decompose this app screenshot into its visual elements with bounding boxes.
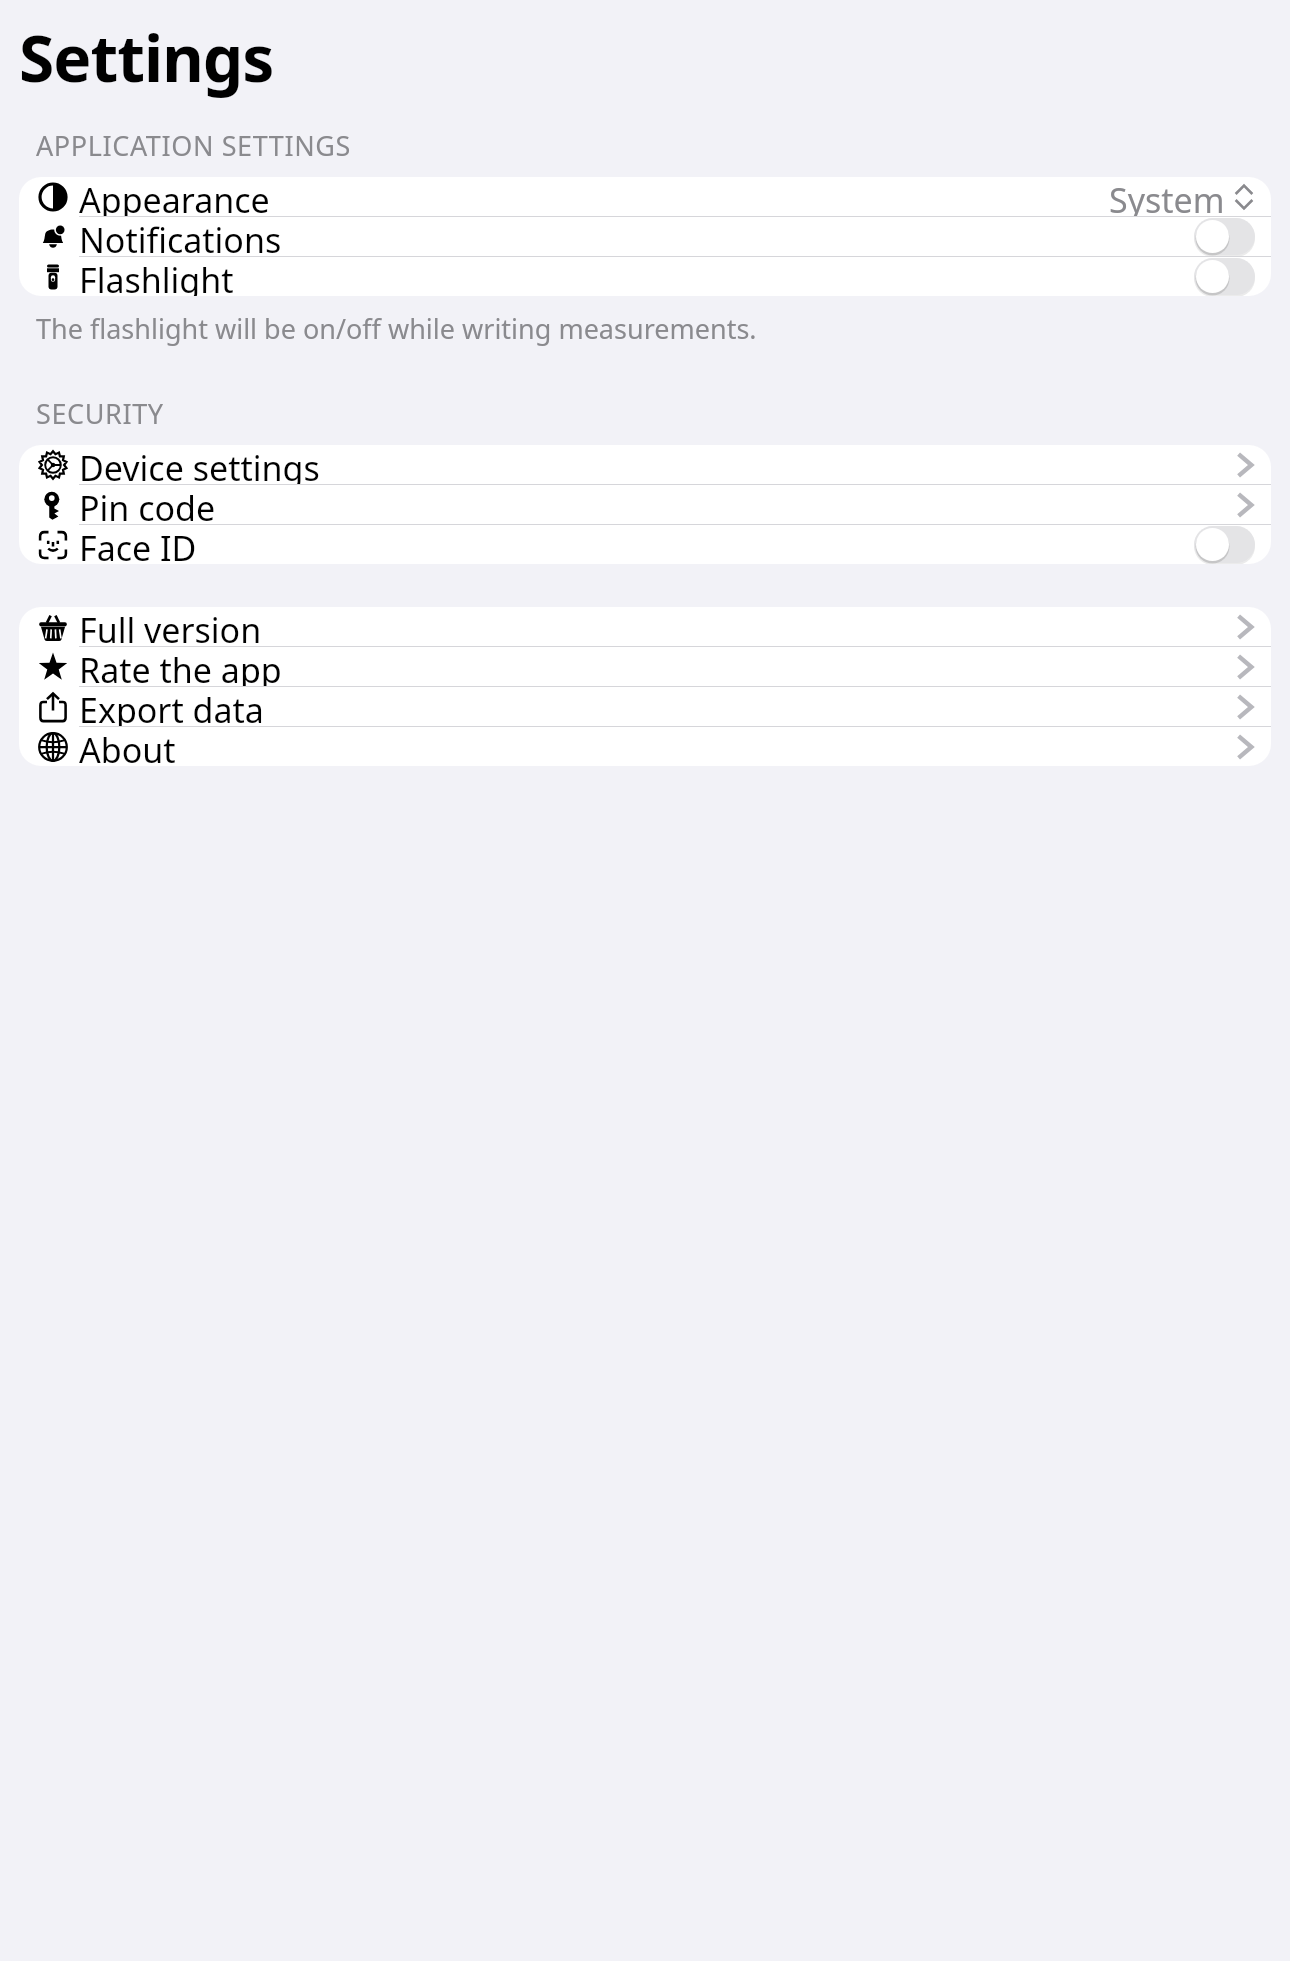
button[interactable]: Toggle (1194, 218, 1255, 255)
button[interactable]: Pin code (19, 485, 1271, 525)
staticText: Flashlight (79, 257, 234, 296)
button[interactable]: Rate the app (19, 647, 1271, 687)
button[interactable]: Device settings (19, 445, 1271, 485)
other: Open (1235, 730, 1255, 764)
staticText: About (79, 727, 176, 766)
button[interactable]: System (1109, 177, 1255, 216)
staticText: Appearance (79, 177, 270, 216)
other: Open (1235, 448, 1255, 482)
staticText: SECURITY (36, 395, 164, 432)
staticText: Pin code (79, 485, 216, 524)
other: Open (1235, 610, 1255, 644)
button[interactable]: Flashlight (19, 257, 1271, 296)
staticText: System (1109, 177, 1225, 216)
staticText: Export data (79, 687, 264, 726)
staticText: Notifications (79, 217, 282, 256)
button[interactable]: Toggle (1194, 258, 1255, 295)
button[interactable]: About (19, 727, 1271, 766)
staticText: APPLICATION SETTINGS (36, 127, 351, 164)
staticText: Full version (79, 607, 262, 646)
other: Open (1235, 650, 1255, 684)
button[interactable]: Appearance (19, 177, 1271, 217)
staticText: Rate the app (79, 647, 282, 686)
other: Open (1235, 690, 1255, 724)
staticText: The flashlight will be on/off while writ… (36, 310, 757, 347)
staticText: Device settings (79, 445, 320, 484)
button[interactable]: Export data (19, 687, 1271, 727)
button[interactable]: Full version (19, 607, 1271, 647)
other: Open (1235, 488, 1255, 522)
staticText: Settings (19, 14, 274, 101)
button[interactable]: Toggle (1194, 526, 1255, 563)
button[interactable]: Face ID (19, 525, 1271, 564)
staticText: Face ID (79, 525, 197, 564)
button[interactable]: Notifications (19, 217, 1271, 257)
